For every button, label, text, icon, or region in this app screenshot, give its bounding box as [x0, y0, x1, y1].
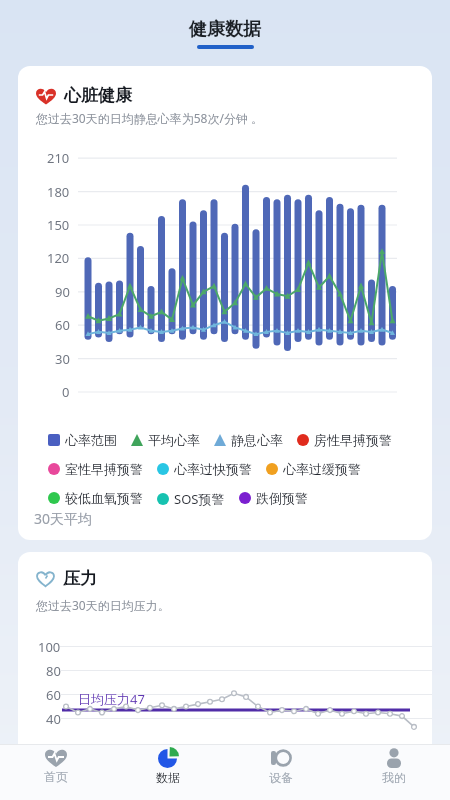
button[interactable]: 首页 [0, 745, 112, 800]
staticText: 我的 [382, 770, 406, 785]
staticText: 较低血氧预警 [65, 490, 143, 506]
staticText: 首页 [44, 769, 68, 784]
button[interactable]: 数据 [112, 745, 224, 800]
staticText: 您过去30天的日均静息心率为58次/分钟 。 [36, 110, 264, 126]
staticText: 心率过缓预警 [283, 461, 361, 477]
staticText: 您过去30天的日均压力。 [36, 597, 170, 613]
staticText: 心率范围 [65, 432, 117, 448]
staticText: 健康数据 [189, 18, 261, 41]
staticText: 心率过快预警 [174, 461, 252, 477]
staticText: 设备 [269, 770, 293, 785]
button[interactable]: 我的 [337, 745, 450, 800]
staticText: 室性早搏预警 [65, 461, 143, 477]
staticText: 心脏健康 [64, 85, 132, 106]
staticText: 跌倒预警 [256, 490, 308, 506]
button[interactable]: 健康数据 [189, 18, 261, 49]
staticText: 平均心率 [148, 432, 200, 448]
staticText: SOS预警 [174, 490, 225, 508]
staticText: 压力 [63, 568, 97, 589]
staticText: 房性早搏预警 [314, 432, 392, 448]
staticText: 数据 [156, 770, 180, 785]
button[interactable]: 设备 [224, 745, 337, 800]
staticText: 30天平均 [34, 509, 93, 528]
staticText: 静息心率 [231, 432, 283, 448]
